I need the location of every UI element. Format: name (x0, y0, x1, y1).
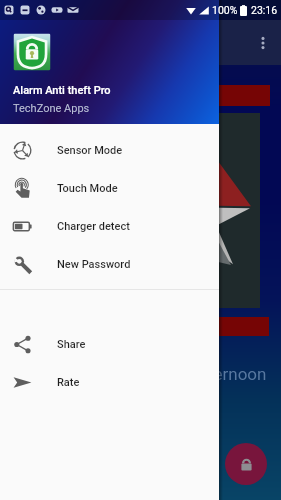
staticText: Good afternoon (148, 364, 267, 384)
staticText: Share (57, 338, 86, 351)
staticText: New Password (57, 258, 131, 271)
staticText: Sensor Mode (57, 144, 123, 157)
staticText: 23:16 (251, 4, 278, 16)
staticText: Alarm Anti theft Pro (13, 84, 111, 97)
staticText: Charger detect (57, 220, 130, 233)
staticText: Touch Mode (57, 182, 118, 195)
button[interactable]: Charger detect (0, 207, 219, 245)
staticText: TechZone Apps (13, 102, 90, 115)
button[interactable]: Share (0, 325, 219, 363)
button[interactable]: New Password (0, 245, 219, 283)
button[interactable]: Sensor Mode (0, 131, 219, 169)
button[interactable]: Rate (0, 363, 219, 401)
staticText: 100% (212, 4, 238, 16)
button[interactable]: Lock (225, 443, 267, 485)
button[interactable]: More options (251, 31, 275, 55)
button[interactable]: Touch Mode (0, 169, 219, 207)
staticText: Rate (57, 376, 80, 389)
